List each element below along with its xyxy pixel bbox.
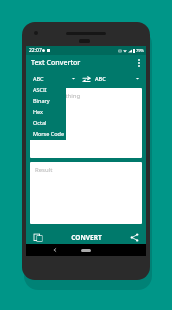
staticText: Type something <box>35 92 81 100</box>
staticText: Octal <box>33 119 47 126</box>
staticText: 79% <box>136 48 144 53</box>
button[interactable]: Binary <box>29 95 66 106</box>
staticText: Text Convertor <box>31 58 81 68</box>
button[interactable]: CONVERT <box>46 228 126 246</box>
button[interactable]: Home <box>78 245 94 255</box>
staticText: ASCII <box>33 86 47 93</box>
button[interactable]: Octal <box>29 117 66 128</box>
staticText: 22:07 <box>29 47 42 54</box>
staticText: ABC <box>33 75 44 82</box>
staticText: Morse Code <box>33 130 65 137</box>
button[interactable]: Back <box>50 245 60 255</box>
button[interactable]: Morse Code <box>29 128 66 139</box>
button[interactable]: Copy <box>30 229 46 245</box>
button[interactable]: ABC <box>29 73 66 84</box>
button[interactable]: Hex <box>29 106 66 117</box>
button[interactable]: More options <box>132 56 146 70</box>
button[interactable]: Type something <box>30 88 142 158</box>
staticText: Hex <box>33 108 43 115</box>
button[interactable] <box>30 71 79 86</box>
staticText: Result <box>35 166 53 174</box>
staticText: CONVERT <box>71 233 102 242</box>
button[interactable]: Swap <box>79 72 93 86</box>
button[interactable]: Share <box>126 229 142 245</box>
button[interactable]: ABC <box>93 71 142 86</box>
button[interactable]: Result <box>30 162 142 224</box>
staticText: ABC <box>95 75 106 82</box>
button[interactable]: ASCII <box>29 84 66 95</box>
staticText: Binary <box>33 97 50 104</box>
